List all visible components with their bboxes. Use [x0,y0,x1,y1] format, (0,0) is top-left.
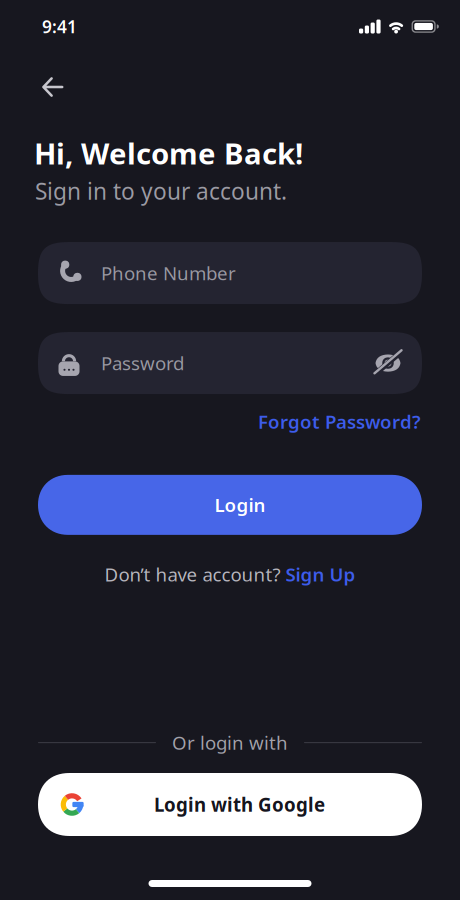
button[interactable]: Sign Up [285,562,355,587]
button[interactable]: Login with Google [38,773,422,836]
staticText: Phone Number [101,261,236,285]
button[interactable]: Show password [374,354,422,372]
staticText: Don’t have account? [104,562,285,587]
staticText: Login [214,492,265,517]
staticText: Password [101,351,184,375]
staticText: Forgot Password? [258,409,421,434]
staticText: 9:41 [42,15,77,38]
button[interactable]: Forgot Password? [258,409,421,434]
button[interactable]: Back [42,77,63,97]
staticText: Sign in to your account. [35,176,287,206]
staticText: Hi, Welcome Back! [34,133,303,172]
button[interactable]: Login [38,475,422,535]
staticText: Sign Up [285,562,355,587]
staticText: Or login with [172,730,288,755]
staticText: Login with Google [154,792,325,817]
